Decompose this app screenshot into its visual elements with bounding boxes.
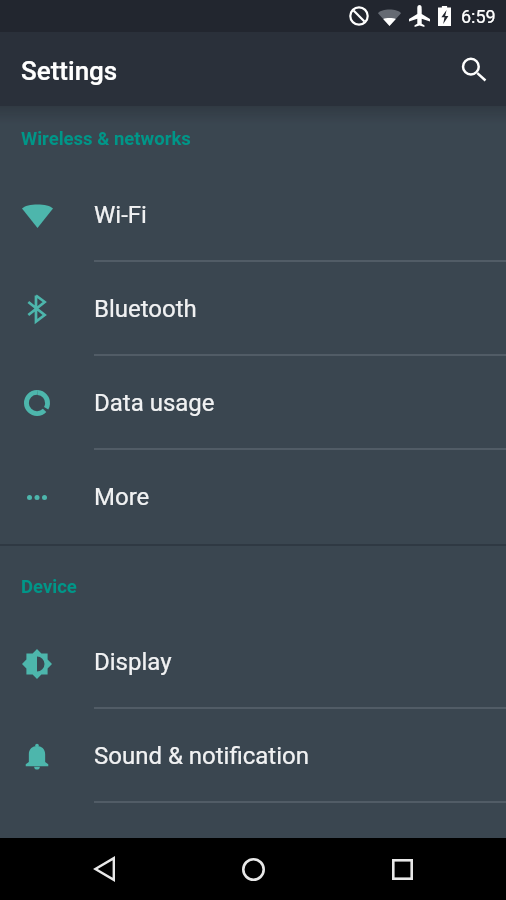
staticText: More xyxy=(94,483,150,511)
staticText: Wi-Fi xyxy=(94,201,147,229)
staticText: Sound & notification xyxy=(94,742,309,770)
button[interactable]: Data usage xyxy=(0,356,506,450)
button[interactable]: Home xyxy=(203,838,303,900)
button[interactable]: Recents xyxy=(352,838,452,900)
button[interactable]: Search xyxy=(448,43,500,95)
staticText: Data usage xyxy=(94,389,215,417)
button[interactable]: Back xyxy=(54,838,154,900)
staticText: Settings xyxy=(21,56,118,86)
button[interactable]: Wi-Fi xyxy=(0,168,506,262)
button[interactable]: Bluetooth xyxy=(0,262,506,356)
staticText: 6:59 xyxy=(461,6,496,27)
staticText: Wireless & networks xyxy=(21,128,191,150)
button[interactable]: Display xyxy=(0,615,506,709)
staticText: Display xyxy=(94,648,172,676)
staticText: Device xyxy=(21,576,77,598)
button[interactable]: Sound & notification xyxy=(0,709,506,803)
staticText: Bluetooth xyxy=(94,295,197,323)
button[interactable]: More xyxy=(0,450,506,544)
